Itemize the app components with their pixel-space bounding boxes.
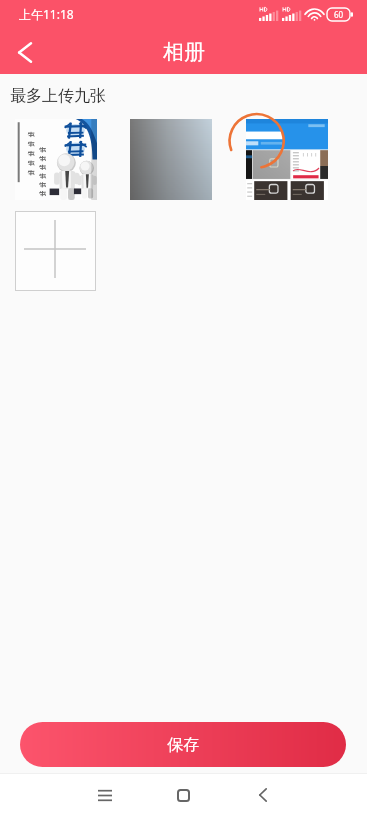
button[interactable]: Recents bbox=[82, 774, 127, 816]
staticText: 最多上传九张 bbox=[10, 86, 106, 106]
button[interactable]: Back bbox=[240, 774, 285, 816]
staticText: 60 bbox=[334, 9, 344, 20]
staticText: 上午11:18 bbox=[19, 6, 74, 22]
button[interactable]: Add photo bbox=[15, 211, 96, 291]
button[interactable]: Photo 3 bbox=[246, 119, 328, 200]
button[interactable]: Home bbox=[161, 774, 206, 816]
button[interactable]: Photo 2 bbox=[130, 119, 212, 200]
button[interactable]: Back bbox=[0, 27, 48, 74]
button[interactable]: 保存 bbox=[20, 722, 346, 767]
button[interactable]: Photo 1 bbox=[15, 119, 97, 200]
staticText: 相册 bbox=[163, 39, 205, 65]
staticText: 保存 bbox=[167, 735, 199, 755]
